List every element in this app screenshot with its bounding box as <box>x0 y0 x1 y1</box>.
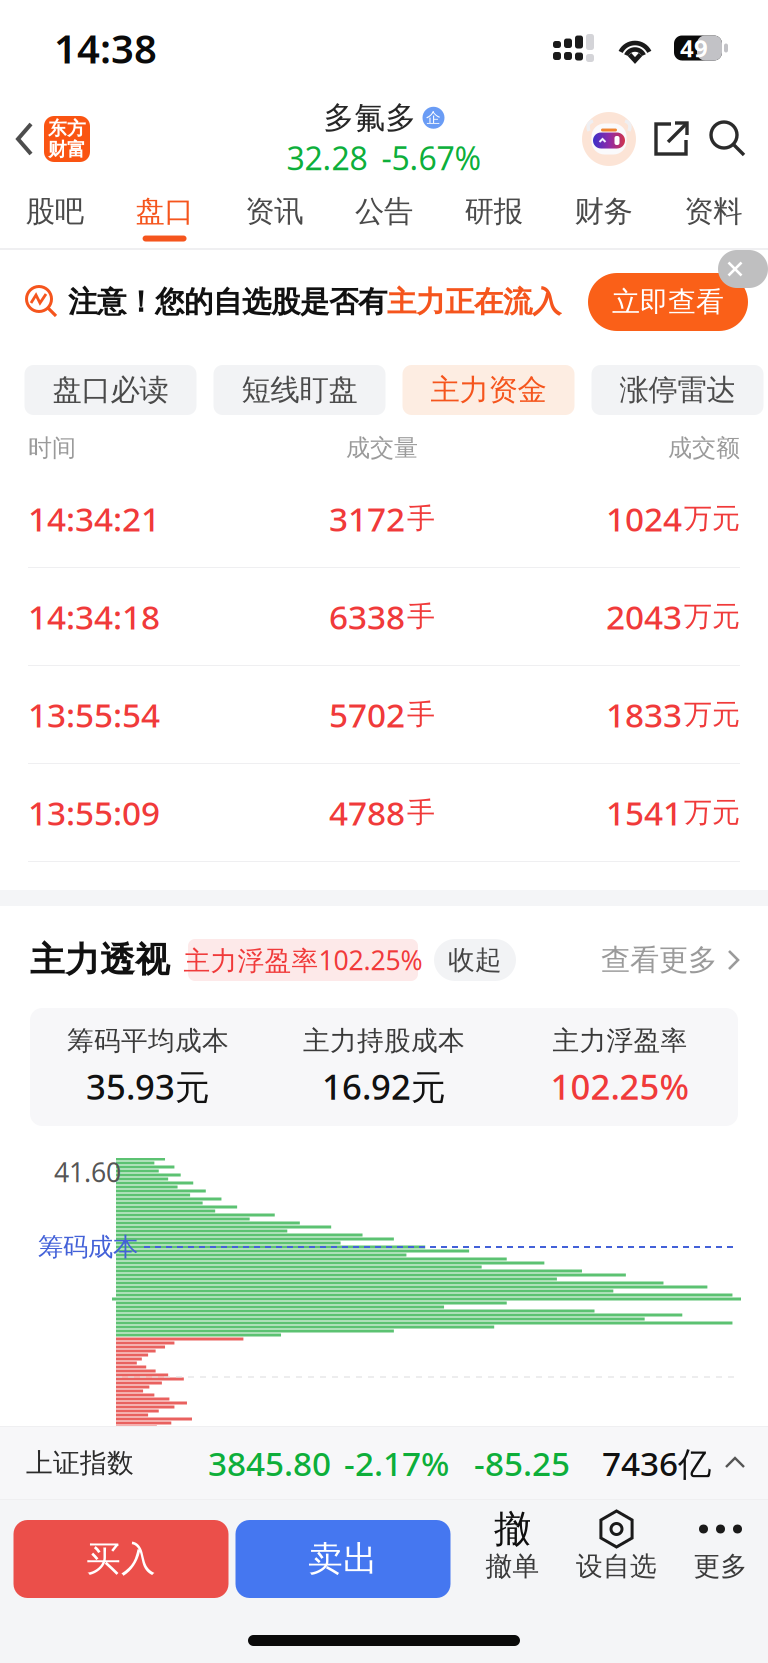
button[interactable]: 涨停雷达 <box>591 365 763 415</box>
staticText: -5.67% <box>381 137 481 179</box>
button[interactable]: 收起 <box>434 939 516 981</box>
staticText: 更多 <box>693 1550 747 1583</box>
staticText: 多氟多 <box>323 99 416 137</box>
staticText: 主力浮盈率102.25% <box>183 942 422 978</box>
button[interactable]: 短线盯盘 <box>213 365 385 415</box>
staticText: 4788 <box>329 790 405 835</box>
staticText: 万元 <box>684 795 740 830</box>
staticText: 1024 <box>606 496 682 541</box>
staticText: -2.17% <box>344 1441 449 1485</box>
staticText: 卖出 <box>308 1538 378 1580</box>
button[interactable]: 查看更多 <box>601 932 740 988</box>
staticText: 14:34:21 <box>28 496 160 541</box>
staticText: 14:38 <box>54 21 157 74</box>
staticText: 撤单 <box>485 1550 539 1583</box>
staticText: 主力浮盈率 <box>552 1025 687 1057</box>
staticText: 35.93元 <box>86 1063 210 1109</box>
staticText: 41.60 <box>54 1154 121 1190</box>
staticText: 7436亿 <box>602 1441 711 1485</box>
staticText: 102.25% <box>550 1063 689 1109</box>
staticText: 万元 <box>684 599 740 634</box>
button[interactable]: 主力资金 <box>402 365 574 415</box>
staticText: 资料 <box>684 193 742 229</box>
button[interactable]: 研报 <box>439 182 549 248</box>
staticText: 买入 <box>86 1538 156 1580</box>
staticText: 财务 <box>574 193 632 229</box>
staticText: 手 <box>407 795 435 830</box>
button[interactable]: 资料 <box>658 182 768 248</box>
button[interactable]: 设自选 <box>564 1500 668 1618</box>
staticText: 13:55:54 <box>28 692 160 737</box>
button[interactable]: 资讯 <box>219 182 329 248</box>
staticText: 手 <box>407 697 435 732</box>
staticText: 撤 <box>494 1506 531 1552</box>
staticText: 研报 <box>465 193 523 229</box>
staticText: 盘口必读 <box>52 372 168 408</box>
staticText: 5702 <box>329 692 405 737</box>
staticText: 盘口 <box>136 193 194 229</box>
staticText: 14:34:18 <box>28 594 160 639</box>
staticText: 万元 <box>684 697 740 732</box>
staticText: 东方 <box>48 117 86 140</box>
staticText: 手 <box>407 599 435 634</box>
staticText: 13:55:09 <box>28 790 160 835</box>
staticText: 1833 <box>606 692 682 737</box>
staticText: 筹码平均成本 <box>67 1025 229 1057</box>
button[interactable]: Expand index bar <box>724 1427 746 1499</box>
button[interactable]: Share <box>650 96 692 182</box>
staticText: 财富 <box>48 138 86 161</box>
staticText: 筹码成本 <box>38 1231 138 1262</box>
button[interactable]: 财务 <box>549 182 658 248</box>
staticText: 32.28 <box>286 137 367 179</box>
staticText: 2043 <box>606 594 682 639</box>
staticText: 16.92元 <box>322 1063 446 1109</box>
staticText: 您的自选股是否有 <box>155 284 387 320</box>
staticText: 49 <box>680 32 708 64</box>
staticText: 上证指数 <box>26 1447 134 1479</box>
button[interactable]: 更多 <box>670 1500 768 1618</box>
button[interactable]: 盘口 <box>110 182 219 248</box>
staticText: -85.25 <box>474 1441 570 1485</box>
button[interactable]: AI assistant <box>582 96 636 182</box>
staticText: 公告 <box>355 193 413 229</box>
button[interactable]: 立即查看 <box>588 273 748 331</box>
staticText: 股吧 <box>26 193 84 229</box>
button[interactable]: Search <box>706 96 748 182</box>
staticText: 资讯 <box>245 193 303 229</box>
button[interactable]: 卖出 <box>235 1520 450 1598</box>
staticText: 1541 <box>606 790 682 835</box>
staticText: 手 <box>407 501 435 536</box>
staticText: 企 <box>426 109 441 127</box>
staticText: 时间 <box>28 433 76 463</box>
staticText: 成交额 <box>668 433 740 463</box>
button[interactable]: Back <box>0 96 98 182</box>
staticText: 立即查看 <box>612 285 724 319</box>
button[interactable]: 买入 <box>13 1520 228 1598</box>
staticText: 成交量 <box>346 433 418 463</box>
staticText: 查看更多 <box>601 942 717 978</box>
button[interactable]: 撤 <box>462 1500 562 1618</box>
staticText: 收起 <box>448 944 502 976</box>
staticText: 6338 <box>329 594 405 639</box>
button[interactable]: 公告 <box>329 182 439 248</box>
button[interactable]: 股吧 <box>0 182 110 248</box>
staticText: 注意！ <box>68 284 155 320</box>
button[interactable]: 盘口必读 <box>24 365 196 415</box>
staticText: 主力持股成本 <box>303 1025 465 1057</box>
staticText: 3845.80 <box>208 1441 331 1485</box>
staticText: 设自选 <box>576 1550 657 1583</box>
staticText: 万元 <box>684 501 740 536</box>
staticText: 3172 <box>329 496 405 541</box>
staticText: 涨停雷达 <box>619 372 735 408</box>
staticText: 主力透视 <box>30 939 170 981</box>
button[interactable]: Close <box>718 250 768 288</box>
staticText: 短线盯盘 <box>241 372 357 408</box>
staticText: 主力正在流入 <box>387 284 561 320</box>
staticText: 主力资金 <box>430 372 546 408</box>
